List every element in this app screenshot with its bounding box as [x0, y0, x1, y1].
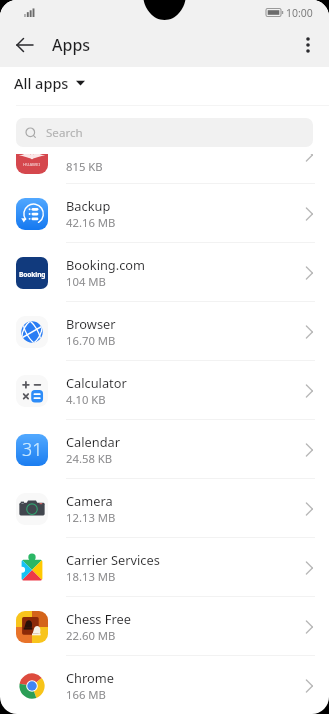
staticText: Backup [66, 197, 111, 214]
staticText: Carrier Services [66, 551, 160, 568]
staticText: 31 [22, 437, 43, 462]
button[interactable] [0, 154, 329, 184]
button[interactable]: Camera [0, 479, 329, 538]
button[interactable]: Chess Free [0, 597, 329, 656]
button[interactable]: Search [16, 118, 313, 147]
button[interactable]: Chrome [0, 656, 329, 714]
staticText: Search [46, 125, 83, 141]
staticText: 18.13 MB [66, 569, 116, 584]
button[interactable]: More options [292, 29, 324, 61]
button[interactable]: All apps [13, 71, 86, 95]
staticText: 24.58 KB [66, 451, 113, 466]
staticText: Browser [66, 315, 116, 332]
button[interactable]: Calculator [0, 361, 329, 420]
staticText: 22.60 MB [66, 628, 116, 643]
staticText: 815 KB [66, 159, 103, 174]
staticText: 166 MB [66, 687, 106, 702]
button[interactable]: Carrier Services [0, 538, 329, 597]
button[interactable]: 31 [0, 420, 329, 479]
button[interactable]: Browser [0, 302, 329, 361]
staticText: 42.16 MB [66, 215, 116, 230]
staticText: All apps [14, 73, 69, 93]
button[interactable]: Backup [0, 184, 329, 243]
staticText: 4.10 KB [66, 392, 106, 407]
staticText: Chess Free [66, 610, 131, 627]
staticText: Apps [52, 34, 91, 56]
button[interactable]: Back [9, 29, 41, 61]
staticText: 104 MB [66, 274, 106, 289]
staticText: Camera [66, 492, 113, 509]
staticText: HUAWEI [23, 162, 41, 168]
staticText: Calendar [66, 433, 121, 450]
staticText: Booking.com [66, 256, 145, 273]
staticText: Booking [19, 270, 46, 279]
staticText: 12.13 MB [66, 510, 116, 525]
staticText: 16.70 MB [66, 333, 116, 348]
staticText: Calculator [66, 374, 127, 391]
button[interactable]: Booking [0, 243, 329, 302]
staticText: Chrome [66, 669, 114, 686]
staticText: 10:00 [286, 6, 313, 20]
